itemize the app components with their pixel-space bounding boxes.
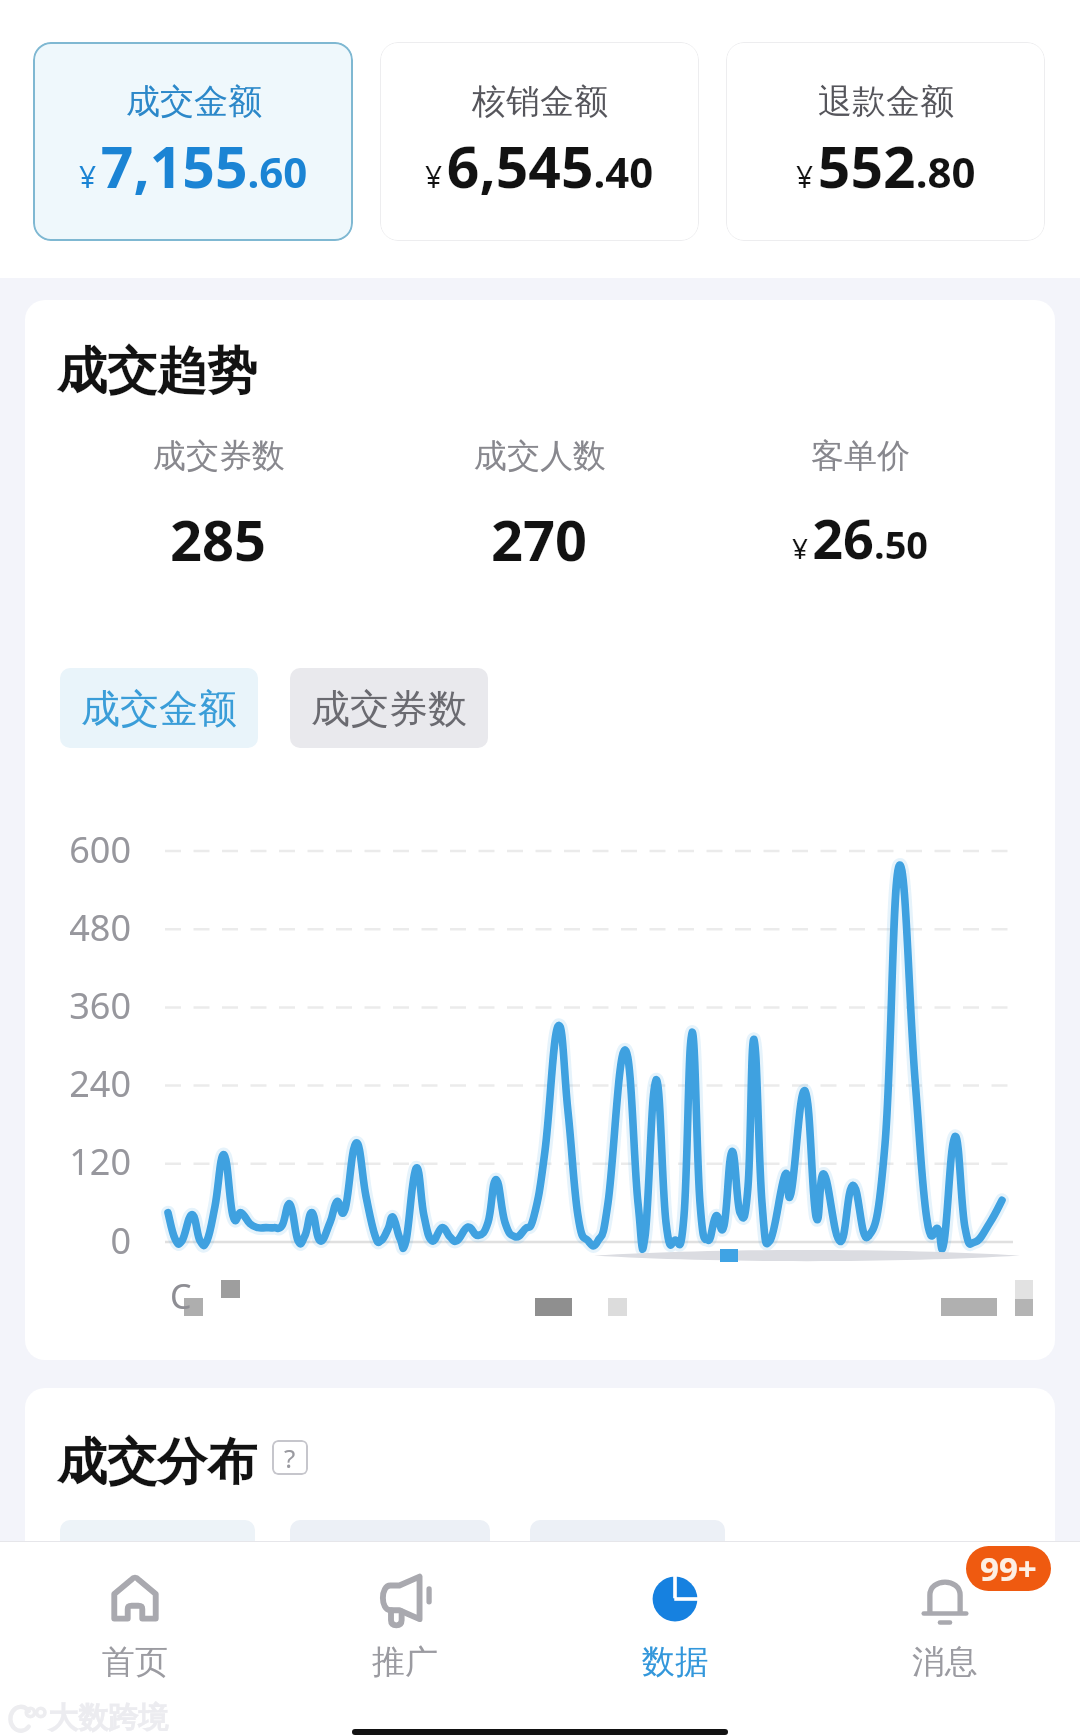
staticText: 0 [25,1216,131,1265]
button[interactable]: Distribution filter 1 [60,1520,255,1588]
staticText: 600 [25,825,131,874]
staticText: ¥ 7,155.60 [79,127,308,205]
staticText: 推广 [372,1641,438,1683]
staticText: 240 [25,1059,131,1108]
staticText: 核销金额 [472,80,608,123]
staticText: 270 [491,501,588,577]
button[interactable]: Help [272,1440,308,1475]
staticText: 成交券数 [311,684,467,733]
staticText: 360 [25,981,131,1030]
other: Messages [917,1571,973,1627]
button[interactable]: 核销金额 [380,42,699,241]
button[interactable]: Promotions [270,1571,540,1683]
other: Promotions [377,1571,433,1627]
button[interactable]: Distribution filter 3 [530,1520,725,1588]
button[interactable]: 成交金额 [60,668,258,748]
staticText: 退款金额 [818,80,954,123]
staticText: 成交金额 [126,80,262,123]
staticText: 成交趋势 [57,340,257,403]
staticText: 成交分布 [57,1431,257,1494]
staticText: 285 [170,501,267,577]
staticText: ? [284,1440,296,1475]
staticText: 480 [25,903,131,952]
button[interactable]: Distribution filter 2 [290,1520,490,1588]
staticText: 数据 [642,1641,708,1683]
staticText: 消息 [912,1641,978,1683]
other: Data [647,1571,703,1627]
button[interactable]: Data [540,1571,810,1683]
staticText: 成交金额 [81,684,237,733]
staticText: 成交券数 [153,435,285,477]
staticText: ¥ 26.50 [792,501,929,575]
button[interactable]: 退款金额 [726,42,1045,241]
button[interactable]: 成交金额 [33,42,353,241]
button[interactable]: Messages [810,1571,1080,1683]
staticText: C [170,1273,192,1319]
staticText: 120 [25,1137,131,1186]
staticText: 成交人数 [474,435,606,477]
staticText: 大数跨境 [48,1699,168,1736]
staticText: 99+ [980,1546,1037,1591]
staticText: ¥ 552.80 [796,127,976,205]
staticText: ¥ 6,545.40 [425,127,654,205]
button[interactable]: 成交券数 [290,668,488,748]
other: Home [107,1571,163,1627]
button[interactable]: Home [0,1571,270,1683]
staticText: 首页 [102,1641,168,1683]
staticText: 客单价 [811,435,910,477]
